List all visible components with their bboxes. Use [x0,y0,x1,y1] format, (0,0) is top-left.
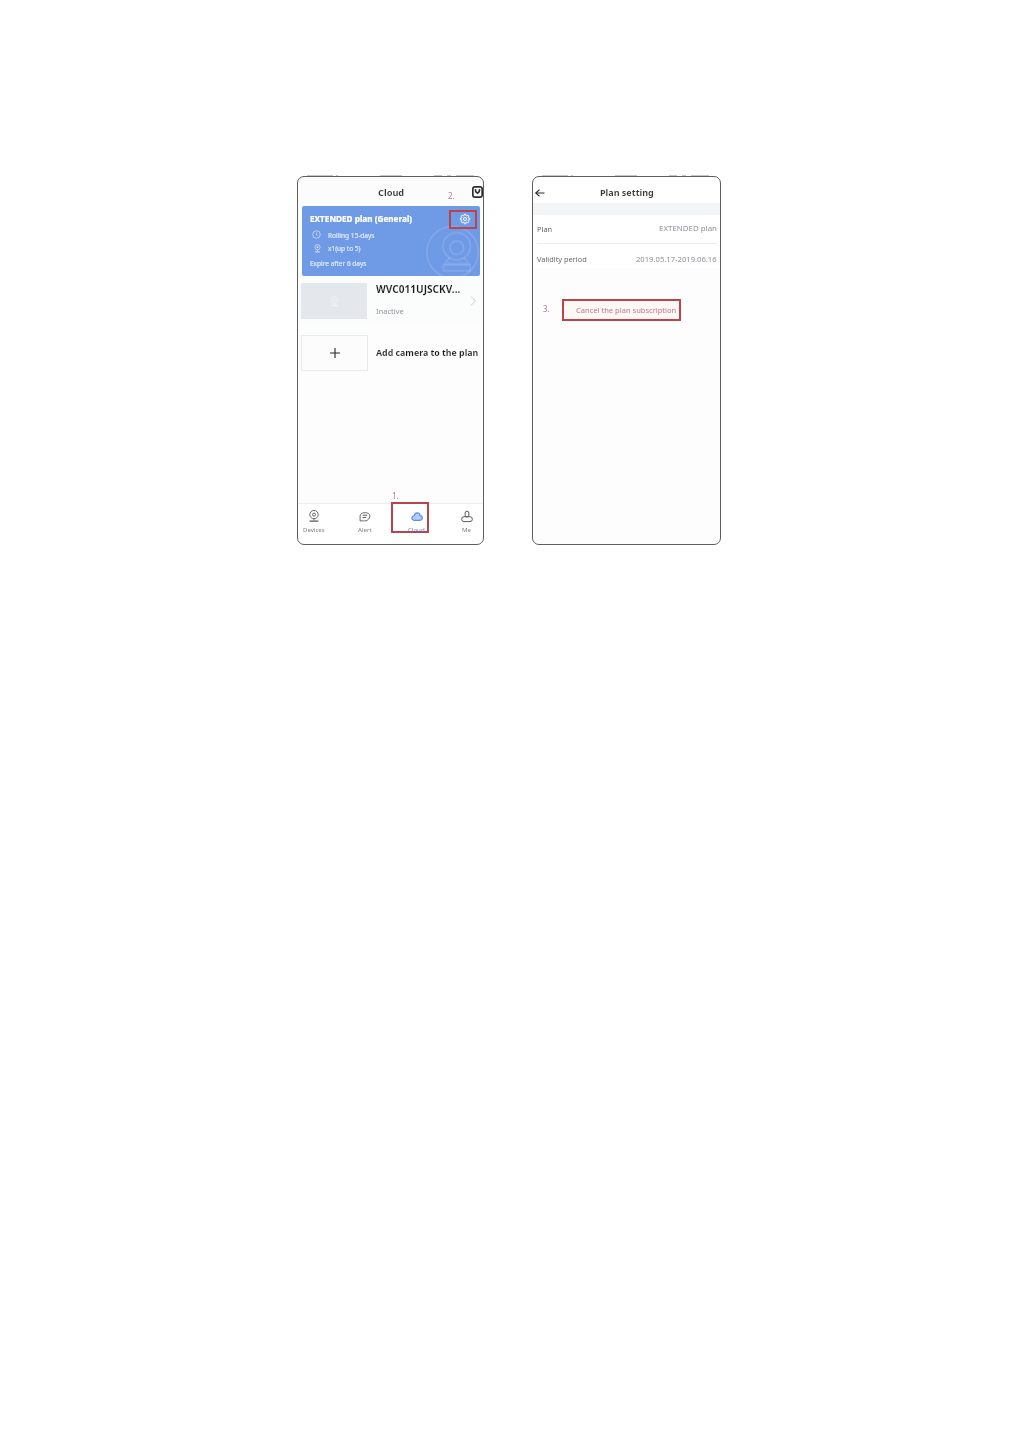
staticText: EXTENDED plan [659,223,717,234]
staticText: 1. [392,490,399,501]
staticText: Cloud [408,525,425,533]
button[interactable]: Devices [297,503,337,545]
button[interactable]: Add camera to the plan [297,331,484,375]
staticText: EXTENDED plan (General) [310,213,413,224]
button[interactable]: Inbox [472,186,483,198]
staticText: WVC011UJSCKV... [376,282,461,296]
staticText: Devices [303,525,325,533]
staticText: Plan setting [600,186,654,198]
staticText: Cancel the plan subscription [576,305,677,315]
staticText: Inactive [376,306,404,316]
staticText: Add camera to the plan [376,347,479,359]
staticText: Plan [537,224,553,234]
staticText: Validity period [537,254,587,264]
staticText: 2019.05.17-2019.06.16 [636,254,717,264]
staticText: Cloud [378,186,405,199]
button[interactable]: WVC011UJSCKV... [297,277,484,324]
staticText: Expire after 6 days [310,259,367,268]
staticText: 2. [448,190,455,201]
button[interactable]: Back [535,188,545,198]
staticText: Alert [358,525,372,533]
button[interactable]: EXTENDED plan (General) [302,206,480,276]
button[interactable]: Cancel the plan subscription [562,299,681,321]
button[interactable]: Alert [341,503,388,545]
staticText: Rolling 15-days [328,231,375,240]
button[interactable]: Cloud [393,503,440,545]
staticText: Me [462,525,471,533]
staticText: 3. [543,303,550,314]
staticText: x1(up to 5) [328,244,361,253]
button[interactable]: Plan settings [460,214,470,224]
button[interactable]: Me [443,503,484,545]
